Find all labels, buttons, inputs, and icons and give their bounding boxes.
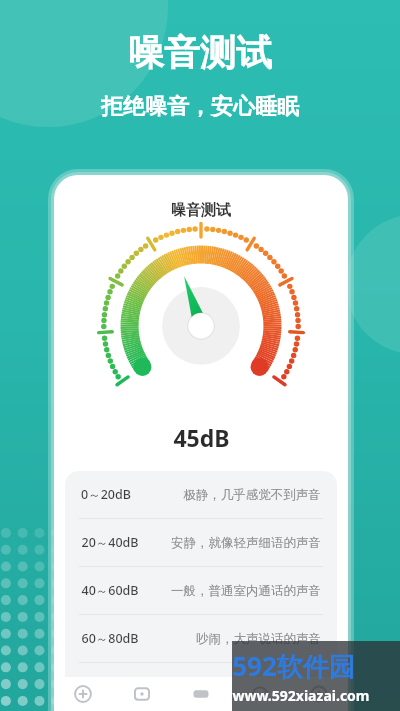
staticText: 一般，普通室内通话的声音 [171,583,321,599]
staticText: 很吵，可使听绝细胞遭到破坏 [158,679,321,695]
staticText: 极静，几乎感觉不到声音 [183,487,321,503]
button[interactable]: Add [54,677,112,711]
button[interactable]: 20～40dB [65,519,337,566]
staticText: www.592xiazai.com [232,686,370,705]
button[interactable]: 60～80dB [65,615,337,662]
staticText: 安静，就像轻声细语的声音 [171,535,321,551]
button[interactable]: 80～100dB [65,663,337,710]
button[interactable]: Profile [289,677,348,711]
staticText: 拒绝噪音，安心睡眠 [101,93,299,121]
staticText: 20～40dB [81,534,139,551]
staticText: 592软件园 [232,648,355,684]
button[interactable]: Record [112,677,171,711]
staticText: 45dB [173,422,230,453]
button[interactable]: 0～20dB [65,471,337,518]
button[interactable]: Home [171,677,230,711]
staticText: 60～80dB [81,630,139,647]
staticText: 40～60dB [81,582,139,599]
staticText: 噪音测试 [128,30,272,75]
button[interactable]: Meter [230,677,289,711]
staticText: 0～20dB [81,486,131,503]
staticText: 吵闹，大声说话的声音 [196,631,321,647]
button[interactable]: 40～60dB [65,567,337,614]
staticText: 80～100dB [81,678,146,695]
staticText: 噪音测试 [171,201,231,220]
